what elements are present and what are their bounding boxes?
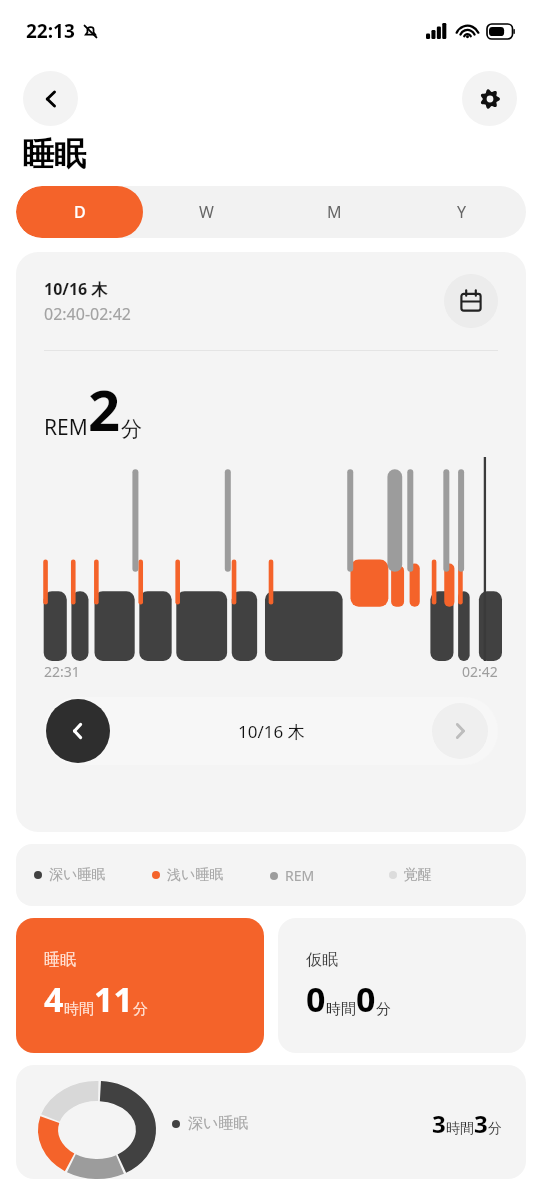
staticText: 2 <box>88 371 121 447</box>
staticText: W <box>199 201 214 223</box>
staticText: 深い睡眠 <box>49 866 106 884</box>
staticText: 浅い睡眠 <box>167 866 224 884</box>
button[interactable]: Settings <box>462 71 517 126</box>
staticText: 10/16 木 <box>44 278 108 300</box>
button[interactable]: Previous day <box>46 699 110 763</box>
button[interactable]: W <box>143 186 270 238</box>
staticText: 時間 <box>446 1120 474 1138</box>
staticText: 睡眠 <box>22 134 86 174</box>
staticText: 時間 <box>64 1000 94 1019</box>
button[interactable]: 仮眠 <box>278 918 526 1053</box>
button[interactable]: Back <box>23 71 78 126</box>
staticText: 4 <box>44 976 64 1022</box>
staticText: Y <box>457 201 467 223</box>
staticText: REM <box>44 413 88 442</box>
button[interactable]: M <box>270 186 398 238</box>
button[interactable]: Y <box>398 186 526 238</box>
button[interactable]: 深い睡眠 <box>16 1065 526 1179</box>
staticText: 22:13 <box>26 18 75 44</box>
staticText: REM <box>285 866 315 885</box>
staticText: 0 <box>306 976 326 1022</box>
staticText: 分 <box>133 1000 148 1019</box>
staticText: 覚醒 <box>404 866 432 884</box>
staticText: 睡眠 <box>44 950 76 970</box>
staticText: 11 <box>94 976 133 1022</box>
staticText: 仮眠 <box>306 950 338 970</box>
staticText: 3 <box>432 1107 446 1140</box>
staticText: 分 <box>488 1120 502 1138</box>
staticText: 10/16 木 <box>238 720 305 743</box>
button[interactable]: Next day <box>432 703 488 759</box>
staticText: 0 <box>356 976 376 1022</box>
staticText: D <box>74 201 86 223</box>
button[interactable]: Calendar <box>444 274 498 328</box>
staticText: 分 <box>376 1000 391 1019</box>
staticText: M <box>327 201 342 223</box>
staticText: 時間 <box>326 1000 356 1019</box>
staticText: 02:40-02:42 <box>44 303 131 325</box>
staticText: 深い睡眠 <box>188 1114 249 1133</box>
staticText: 22:31 <box>44 662 80 681</box>
button[interactable]: D <box>16 186 143 238</box>
staticText: 分 <box>121 416 142 442</box>
staticText: 3 <box>474 1107 488 1140</box>
staticText: 02:42 <box>462 662 498 681</box>
button[interactable]: 睡眠 <box>16 918 264 1053</box>
